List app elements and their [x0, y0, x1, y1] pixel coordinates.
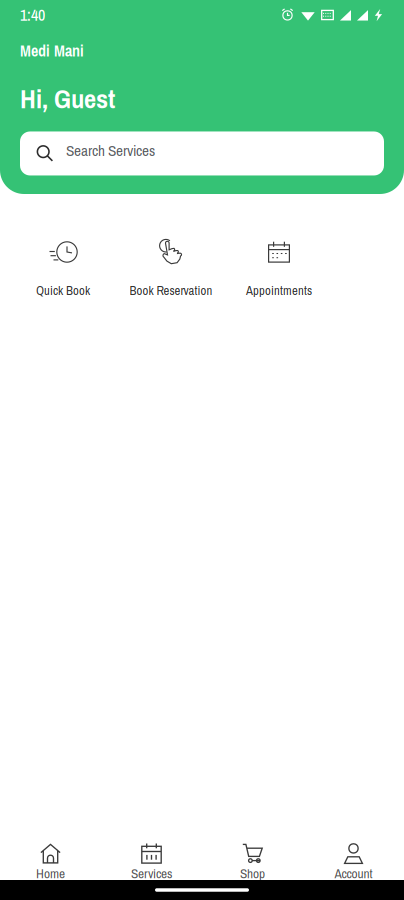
staticText: Search Services [66, 140, 155, 161]
staticText: Account [334, 864, 372, 882]
staticText: Services [131, 864, 172, 882]
button[interactable]: Appointments [225, 238, 333, 299]
button[interactable]: Quick Book [9, 238, 117, 299]
staticText: Quick Book [36, 282, 90, 299]
staticText: Shop [240, 864, 265, 882]
staticText: 1:40 [20, 4, 45, 26]
staticText: Medi Mani [20, 40, 84, 62]
staticText: Home [36, 864, 65, 882]
button[interactable]: Account [303, 822, 404, 883]
button[interactable]: Home [0, 822, 101, 883]
staticText: Hi, Guest [20, 81, 115, 116]
button[interactable]: Book Reservation [117, 238, 225, 299]
staticText: Book Reservation [129, 282, 212, 299]
button[interactable]: Shop [202, 822, 303, 883]
staticText: Appointments [246, 282, 312, 299]
button[interactable]: Services [101, 822, 202, 883]
